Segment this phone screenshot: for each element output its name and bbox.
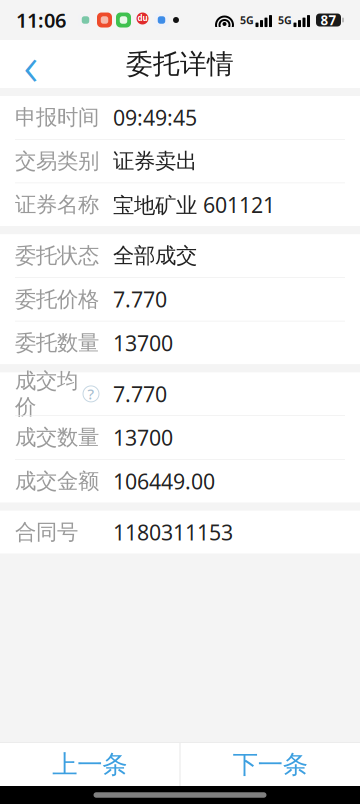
button[interactable]: 上一条 bbox=[0, 743, 180, 786]
staticText: ‹ bbox=[23, 27, 38, 101]
staticText: 申报时间 bbox=[15, 104, 99, 131]
staticText: 上一条 bbox=[52, 749, 127, 780]
staticText: 证券卖出 bbox=[113, 148, 197, 174]
staticText: 宝地矿业 601121 bbox=[113, 190, 275, 219]
staticText: 交易类别 bbox=[15, 148, 99, 174]
staticText: 成交均价 bbox=[15, 368, 78, 420]
button[interactable]: Help bbox=[83, 386, 99, 402]
staticText: du bbox=[137, 13, 147, 23]
staticText: 13700 bbox=[113, 329, 173, 357]
staticText: 87 bbox=[320, 11, 336, 29]
staticText: 7.770 bbox=[113, 380, 167, 408]
staticText: 下一条 bbox=[233, 749, 308, 780]
staticText: 09:49:45 bbox=[113, 103, 197, 132]
staticText: 13700 bbox=[113, 423, 173, 452]
staticText: 1180311153 bbox=[113, 518, 233, 546]
staticText: 成交数量 bbox=[15, 424, 99, 451]
staticText: 全部成交 bbox=[113, 243, 197, 269]
staticText: 委托状态 bbox=[15, 243, 99, 269]
staticText: 7.770 bbox=[113, 285, 167, 313]
staticText: 委托价格 bbox=[15, 286, 99, 312]
button[interactable]: Back bbox=[4, 41, 58, 87]
staticText: 106449.00 bbox=[113, 467, 215, 495]
staticText: 委托详情 bbox=[126, 48, 234, 80]
staticText: 成交金额 bbox=[15, 468, 99, 494]
staticText: 证券名称 bbox=[15, 192, 99, 218]
staticText: 合同号 bbox=[15, 519, 78, 545]
staticText: 5G bbox=[278, 13, 292, 27]
staticText: ? bbox=[87, 384, 94, 404]
button[interactable]: 下一条 bbox=[180, 743, 360, 786]
staticText: 11:06 bbox=[16, 7, 66, 33]
staticText: 委托数量 bbox=[15, 330, 99, 356]
staticText: 5G bbox=[240, 13, 254, 27]
